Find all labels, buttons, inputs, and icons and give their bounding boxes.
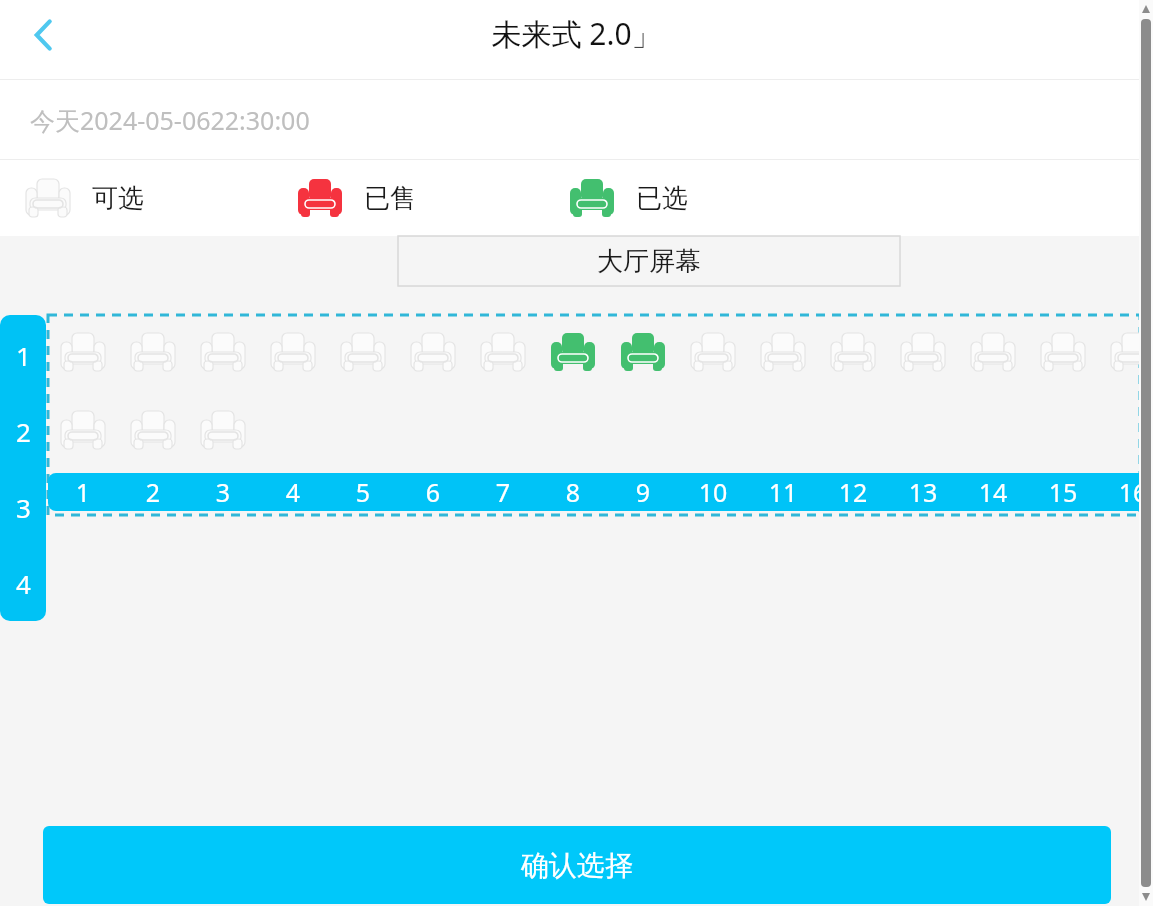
- staticText: 11: [757, 475, 809, 509]
- staticText: 4: [267, 475, 319, 509]
- staticText: 10: [687, 475, 739, 509]
- button[interactable]: Seat row 2 number 2: [129, 401, 177, 459]
- staticText: 1: [16, 338, 31, 373]
- button[interactable]: Back: [14, 0, 74, 70]
- staticText: 3: [197, 475, 249, 509]
- button[interactable]: Seat row 1 number 5: [339, 323, 387, 381]
- button[interactable]: Seat row 2 number 3: [199, 401, 247, 459]
- button[interactable]: Seat row 1 number 9: [619, 323, 667, 381]
- staticText: 13: [897, 475, 949, 509]
- button[interactable]: Seat row 1 number 1: [59, 323, 107, 381]
- button[interactable]: 已售: [296, 160, 416, 236]
- button[interactable]: Seat row 1 number 13: [899, 323, 947, 381]
- staticText: 8: [547, 475, 599, 509]
- button[interactable]: Seat row 1 number 10: [689, 323, 737, 381]
- button[interactable]: Seat row 1 number 14: [969, 323, 1017, 381]
- staticText: 4: [16, 566, 31, 601]
- staticText: 已选: [636, 182, 688, 215]
- button[interactable]: 确认选择: [43, 826, 1111, 904]
- staticText: 已售: [364, 182, 416, 215]
- staticText: 5: [337, 475, 389, 509]
- button[interactable]: Seat row 1 number 16: [1109, 323, 1153, 381]
- staticText: 未来式 2.0」: [491, 13, 662, 54]
- staticText: 6: [407, 475, 459, 509]
- button[interactable]: Seat row 1 number 2: [129, 323, 177, 381]
- button[interactable]: Seat row 1 number 6: [409, 323, 457, 381]
- staticText: 可选: [92, 182, 144, 215]
- staticText: 2: [16, 414, 31, 449]
- staticText: 14: [967, 475, 1019, 509]
- staticText: 12: [827, 475, 879, 509]
- button[interactable]: 已选: [568, 160, 688, 236]
- staticText: 9: [617, 475, 669, 509]
- button[interactable]: Seat row 1 number 8: [549, 323, 597, 381]
- staticText: 今天2024-05-0622:30:00: [30, 103, 310, 137]
- button[interactable]: Seat row 1 number 7: [479, 323, 527, 381]
- button[interactable]: Seat row 1 number 15: [1039, 323, 1087, 381]
- button[interactable]: Seat row 1 number 11: [759, 323, 807, 381]
- button[interactable]: Seat row 1 number 3: [199, 323, 247, 381]
- staticText: 3: [16, 490, 31, 525]
- staticText: 大厅屏幕: [597, 245, 701, 278]
- staticText: 16: [1107, 475, 1140, 509]
- staticText: 1: [57, 475, 109, 509]
- button[interactable]: Seat row 1 number 12: [829, 323, 877, 381]
- button[interactable]: Seat row 2 number 1: [59, 401, 107, 459]
- staticText: 2: [127, 475, 179, 509]
- staticText: 15: [1037, 475, 1089, 509]
- staticText: 7: [477, 475, 529, 509]
- button[interactable]: Seat row 1 number 4: [269, 323, 317, 381]
- staticText: 确认选择: [521, 848, 633, 883]
- button[interactable]: 可选: [24, 160, 144, 236]
